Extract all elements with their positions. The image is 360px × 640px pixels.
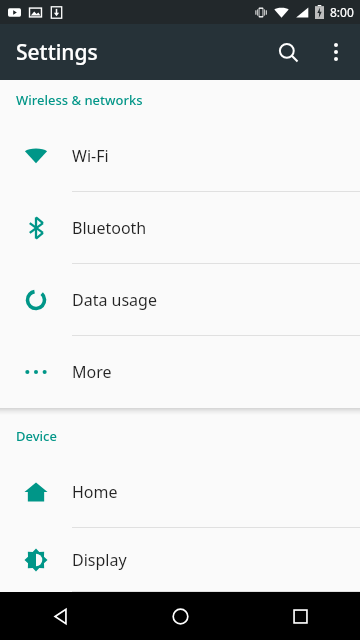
staticText: 8:00	[330, 4, 354, 20]
button[interactable]: Wi-Fi	[0, 120, 360, 192]
staticText: Display	[72, 549, 127, 571]
staticText: Wireless & networks	[16, 91, 143, 109]
staticText: Device	[16, 427, 57, 445]
button[interactable]: Recent apps	[240, 592, 360, 640]
button[interactable]: Home	[120, 592, 240, 640]
staticText: Bluetooth	[72, 217, 147, 239]
button[interactable]: More options	[312, 28, 360, 76]
staticText: Wi-Fi	[72, 145, 109, 167]
button[interactable]: Data usage	[0, 264, 360, 336]
staticText: Data usage	[72, 289, 157, 311]
button[interactable]: Search	[264, 28, 312, 76]
button[interactable]: Display	[0, 528, 360, 592]
staticText: Settings	[16, 38, 98, 67]
staticText: Home	[72, 481, 118, 503]
button[interactable]: Back	[0, 592, 120, 640]
button[interactable]: More	[0, 336, 360, 408]
staticText: More	[72, 361, 112, 383]
button[interactable]: Bluetooth	[0, 192, 360, 264]
button[interactable]: Home	[0, 456, 360, 528]
